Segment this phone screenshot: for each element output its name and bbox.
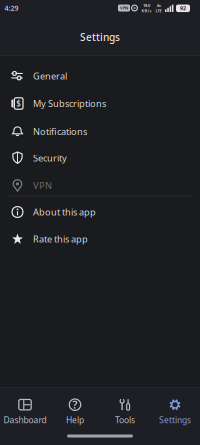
staticText: General [33,70,67,82]
staticText: Notifications [33,125,87,138]
button[interactable]: ? [50,395,100,429]
staticText: ? [72,397,77,412]
button[interactable]: $ [0,89,200,117]
staticText: Tools [115,414,135,426]
button[interactable]: Tools [100,395,150,429]
button[interactable]: Notifications [0,117,200,145]
button[interactable]: Dashboard [0,395,50,429]
staticText: My Subscriptions [33,97,106,110]
button[interactable]: About this app [0,198,200,226]
staticText: Settings [80,30,120,44]
button[interactable]: Settings [150,395,200,429]
staticText: Security [33,152,67,164]
button[interactable]: Rate this app [0,225,200,253]
staticText: About this app [33,206,96,218]
staticText: Help [66,414,84,426]
staticText: 92 [180,5,186,12]
staticText: $ [16,98,21,109]
staticText: VPN [120,5,128,11]
button[interactable]: VPN [0,171,200,199]
button[interactable]: General [0,62,200,90]
staticText: KB/s [141,8,151,13]
staticText: 4:29 [4,3,18,13]
button[interactable]: Security [0,144,200,172]
staticText: Rate this app [33,233,88,245]
staticText: LTE [155,8,161,13]
staticText: Vo [156,3,160,8]
staticText: VPN [33,179,52,192]
staticText: 18.0 [143,3,150,8]
staticText: Settings [159,414,191,426]
staticText: Dashboard [3,414,46,426]
